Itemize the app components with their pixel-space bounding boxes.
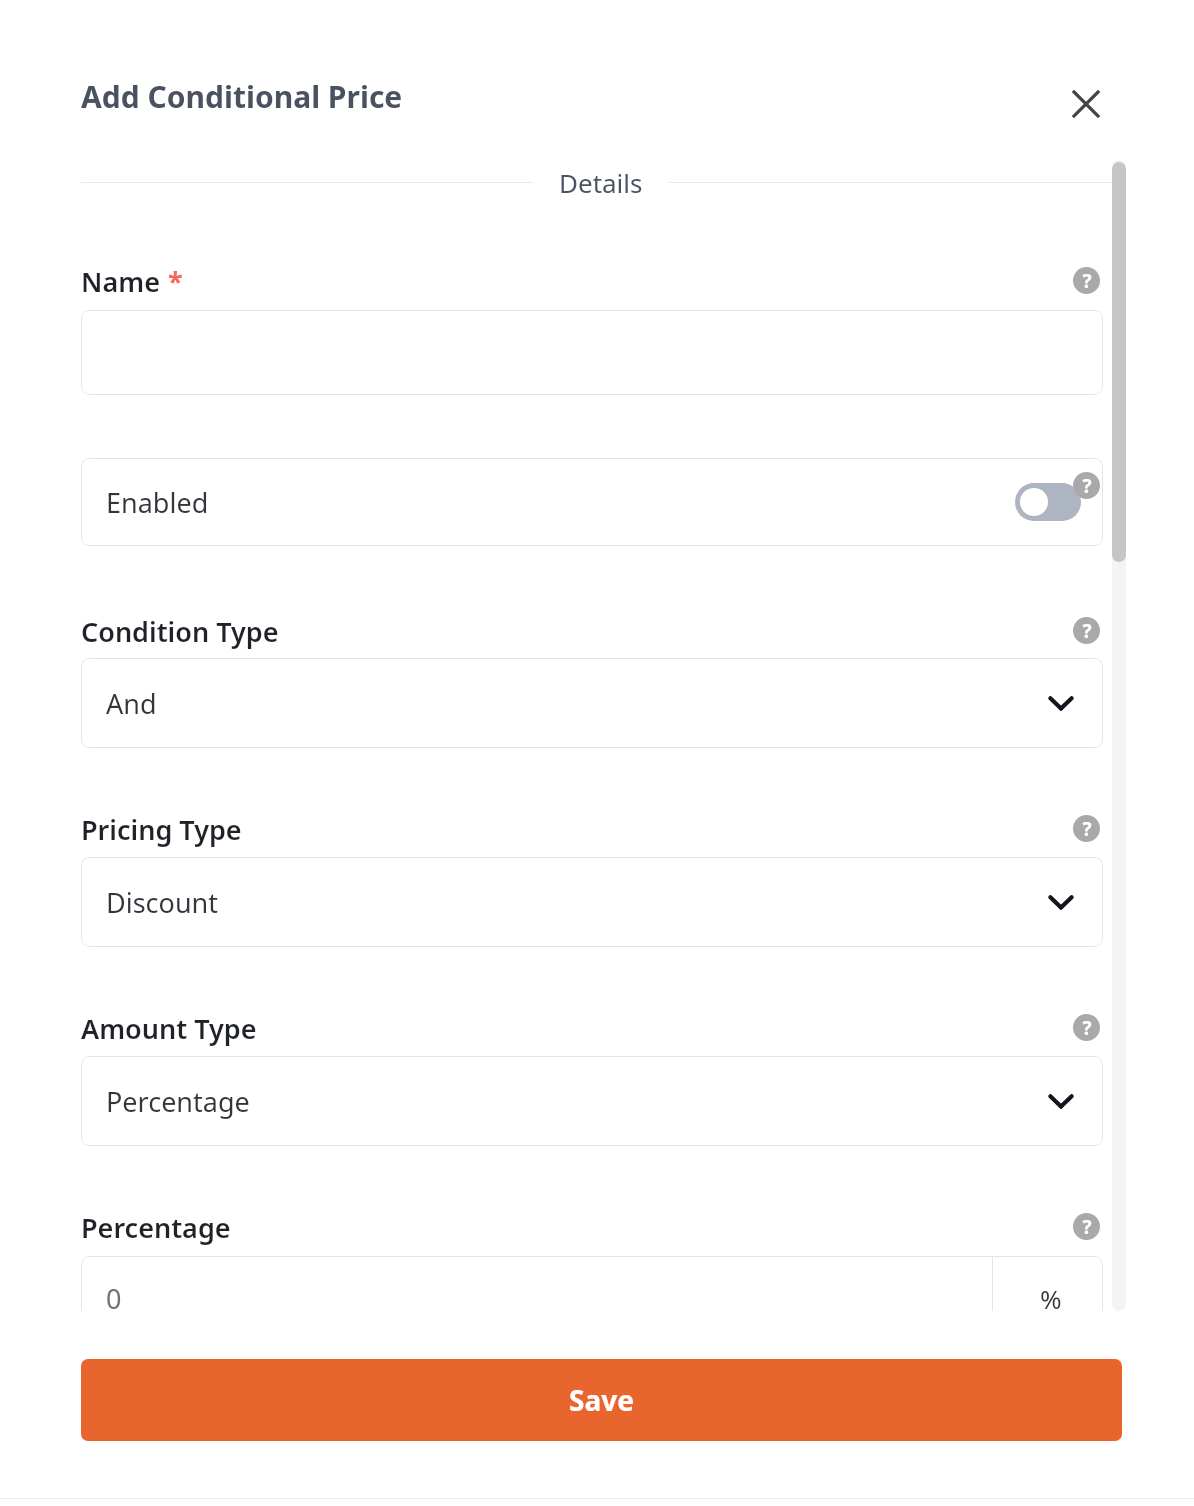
button[interactable]: Enabled <box>81 458 1103 546</box>
button[interactable] <box>81 310 1103 395</box>
staticText: % <box>1040 1281 1062 1316</box>
button[interactable]: Close <box>1060 78 1112 130</box>
staticText: And <box>106 685 157 722</box>
staticText: Percentage <box>81 1209 231 1246</box>
staticText: ? <box>1082 1214 1092 1240</box>
staticText: ? <box>1082 816 1092 842</box>
button[interactable]: Percentage <box>81 1056 1103 1146</box>
staticText: * <box>168 263 183 300</box>
staticText: Percentage <box>106 1083 250 1120</box>
staticText: Save <box>569 1381 634 1419</box>
button[interactable]: Help <box>1073 815 1100 842</box>
staticText: Amount Type <box>81 1010 257 1047</box>
button[interactable]: Help <box>1073 472 1100 499</box>
button[interactable]: And <box>81 658 1103 748</box>
staticText: ? <box>1082 1015 1092 1041</box>
staticText: Details <box>559 165 643 200</box>
button[interactable]: Save <box>81 1359 1122 1441</box>
button[interactable]: Help <box>1073 1213 1100 1240</box>
staticText: 0 <box>106 1280 122 1317</box>
button[interactable]: Help <box>1073 1014 1100 1041</box>
staticText: Enabled <box>106 484 209 521</box>
button[interactable]: 0 <box>81 1256 1103 1341</box>
staticText: ? <box>1082 473 1092 499</box>
staticText: Add Conditional Price <box>81 76 403 117</box>
staticText: ? <box>1082 618 1092 644</box>
button[interactable]: Discount <box>81 857 1103 947</box>
staticText: Discount <box>106 884 219 921</box>
staticText: Name <box>81 263 160 300</box>
staticText: Pricing Type <box>81 811 242 848</box>
staticText: ? <box>1082 268 1092 294</box>
button[interactable]: Help <box>1073 267 1100 294</box>
button[interactable]: Help <box>1073 617 1100 644</box>
button[interactable]: Enabled toggle <box>1015 483 1081 521</box>
staticText: Condition Type <box>81 613 279 650</box>
